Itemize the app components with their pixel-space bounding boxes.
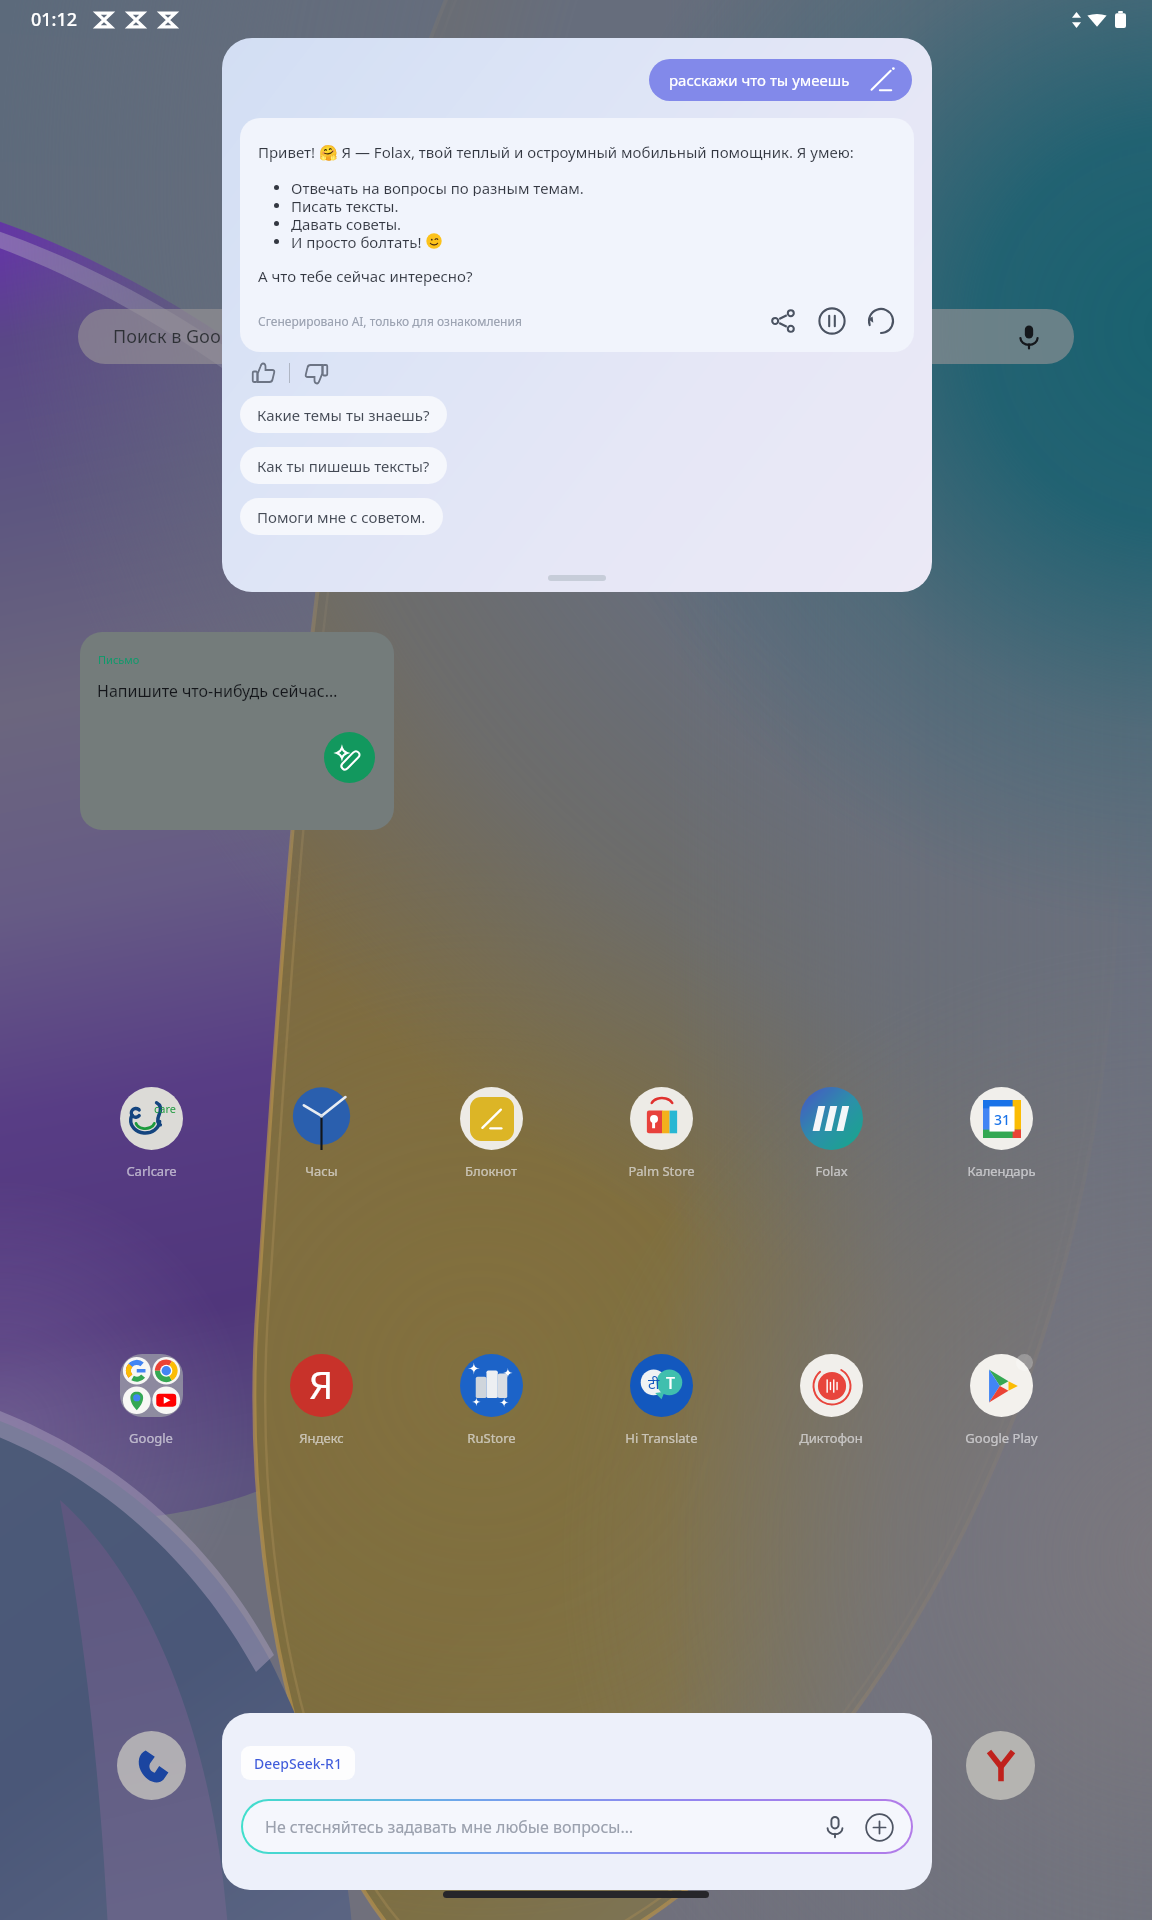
staticText: Hi Translate bbox=[625, 1429, 698, 1447]
button[interactable]: Phone bbox=[117, 1731, 186, 1800]
staticText: Письмо bbox=[98, 652, 140, 667]
button[interactable]: care bbox=[66, 1087, 236, 1180]
button[interactable]: Поиск в Google bbox=[78, 309, 1074, 364]
staticText: расскажи что ты умеешь bbox=[669, 70, 850, 90]
staticText: Блокнот bbox=[465, 1162, 517, 1180]
button[interactable]: Как ты пишешь тексты? bbox=[240, 447, 447, 484]
staticText: Не стесняйтесь задавать мне любые вопрос… bbox=[265, 1816, 634, 1838]
button[interactable]: Я bbox=[236, 1354, 406, 1447]
button[interactable]: Pause bbox=[813, 302, 851, 340]
button[interactable]: 31 bbox=[916, 1087, 1086, 1180]
button[interactable]: Письмо bbox=[80, 632, 394, 830]
button[interactable]: Блокнот bbox=[406, 1087, 576, 1180]
staticText: Яндекс bbox=[299, 1429, 344, 1447]
staticText: 01:12 bbox=[31, 7, 78, 32]
staticText: Google bbox=[129, 1429, 173, 1447]
button[interactable]: Like bbox=[244, 354, 282, 392]
button[interactable]: DeepSeek-R1 bbox=[241, 1746, 355, 1780]
staticText: А что тебе сейчас интересно? bbox=[258, 266, 473, 286]
button[interactable]: Palm Store bbox=[576, 1087, 746, 1180]
button[interactable]: Диктофон bbox=[746, 1354, 916, 1447]
button[interactable]: Google bbox=[66, 1354, 236, 1447]
button[interactable]: RuStore bbox=[406, 1354, 576, 1447]
button[interactable]: Add attachment bbox=[863, 1811, 895, 1843]
staticText: Я bbox=[309, 1358, 334, 1410]
staticText: T bbox=[666, 1372, 675, 1394]
button[interactable]: Не стесняйтесь задавать мне любые вопрос… bbox=[243, 1801, 911, 1852]
staticText: Отвечать на вопросы по разным темам. bbox=[291, 178, 584, 196]
staticText: Календарь bbox=[967, 1162, 1036, 1180]
staticText: Сгенерировано AI, только для ознакомлени… bbox=[258, 313, 522, 329]
staticText: Как ты пишешь тексты? bbox=[257, 456, 430, 476]
other: Voice search bbox=[1012, 320, 1046, 354]
button[interactable]: T bbox=[576, 1354, 746, 1447]
button[interactable]: Помоги мне с советом. bbox=[240, 498, 443, 535]
staticText: Привет! 🤗 Я — Folax, твой теплый и остро… bbox=[258, 142, 854, 162]
staticText: DeepSeek-R1 bbox=[254, 1754, 342, 1773]
button[interactable]: Часы bbox=[236, 1087, 406, 1180]
staticText: Помоги мне с советом. bbox=[257, 507, 426, 527]
staticText: Поиск в Google bbox=[113, 324, 247, 349]
staticText: Carlcare bbox=[126, 1162, 177, 1180]
staticText: Folax bbox=[815, 1162, 848, 1180]
button[interactable]: Какие темы ты знаешь? bbox=[240, 396, 447, 433]
staticText: care bbox=[154, 1101, 176, 1116]
staticText: Palm Store bbox=[628, 1162, 695, 1180]
staticText: Напишите что-нибудь сейчас… bbox=[97, 680, 338, 702]
button[interactable]: Folax bbox=[746, 1087, 916, 1180]
button[interactable]: Dislike bbox=[297, 354, 335, 392]
staticText: RuStore bbox=[467, 1429, 516, 1447]
staticText: Писать тексты. bbox=[291, 196, 399, 214]
staticText: टी bbox=[648, 1373, 660, 1393]
staticText: Какие темы ты знаешь? bbox=[257, 405, 430, 425]
button[interactable]: Yandex Browser bbox=[966, 1731, 1035, 1800]
button[interactable]: Google Play bbox=[916, 1354, 1086, 1447]
button[interactable]: расскажи что ты умеешь bbox=[649, 59, 912, 101]
staticText: 31 bbox=[994, 1110, 1011, 1129]
staticText: Часы bbox=[305, 1162, 338, 1180]
button[interactable]: Write bbox=[324, 732, 375, 783]
button[interactable]: Share bbox=[764, 302, 802, 340]
staticText: Давать советы. bbox=[291, 214, 402, 232]
button[interactable]: Regenerate bbox=[862, 302, 900, 340]
staticText: Google Play bbox=[965, 1429, 1038, 1447]
staticText: Диктофон bbox=[799, 1429, 863, 1447]
button[interactable]: Voice input bbox=[819, 1811, 851, 1843]
staticText: И просто болтать! bbox=[291, 232, 426, 250]
